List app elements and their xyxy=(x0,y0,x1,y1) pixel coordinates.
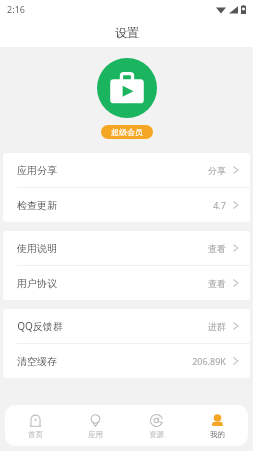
button[interactable]: 首页 xyxy=(5,405,65,446)
staticText: 检查更新 xyxy=(17,199,57,212)
staticText: 4.7 xyxy=(213,199,226,211)
staticText: 清空缓存 xyxy=(17,355,57,368)
button[interactable]: 应用分享 xyxy=(3,153,250,187)
button[interactable]: 超级会员 xyxy=(101,125,153,139)
staticText: 进群 xyxy=(208,321,226,332)
staticText: QQ反馈群 xyxy=(17,319,63,333)
button[interactable]: 用户协议 xyxy=(3,266,250,300)
button[interactable]: 应用 xyxy=(65,405,126,446)
staticText: 超级会员 xyxy=(111,127,143,137)
staticText: 应用 xyxy=(88,430,103,439)
staticText: 设置 xyxy=(115,25,139,40)
staticText: 首页 xyxy=(28,430,43,439)
staticText: 查看 xyxy=(208,278,226,289)
button[interactable]: 清空缓存 xyxy=(3,344,250,378)
button[interactable]: 我的 xyxy=(187,405,248,446)
button[interactable]: QQ反馈群 xyxy=(3,309,250,343)
staticText: 206.89K xyxy=(192,355,226,367)
staticText: 资源 xyxy=(149,430,164,439)
staticText: 2:16 xyxy=(7,3,25,15)
staticText: 应用分享 xyxy=(17,164,57,177)
button[interactable]: 检查更新 xyxy=(3,188,250,222)
staticText: 用户协议 xyxy=(17,277,57,290)
staticText: 分享 xyxy=(208,165,226,176)
staticText: 查看 xyxy=(208,243,226,254)
button[interactable]: 资源 xyxy=(126,405,187,446)
button[interactable]: 使用说明 xyxy=(3,231,250,265)
staticText: 我的 xyxy=(210,430,225,439)
staticText: 使用说明 xyxy=(17,242,57,255)
